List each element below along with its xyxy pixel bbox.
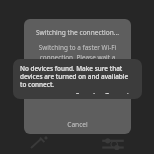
staticText: No devices found. Make sure that devices… [20,64,135,89]
staticText: Try again [105,91,133,94]
staticText: Switching the connection... [28,28,127,37]
button[interactable]: Try again [102,89,136,96]
staticText: connection. Please wait a [28,53,127,62]
button[interactable]: Cancel [72,89,98,96]
button[interactable]: Cancel [24,115,131,133]
staticText: Switching to a faster Wi-Fi [28,43,127,52]
staticText: Cancel [75,91,95,94]
staticText: Cancel [67,120,88,129]
